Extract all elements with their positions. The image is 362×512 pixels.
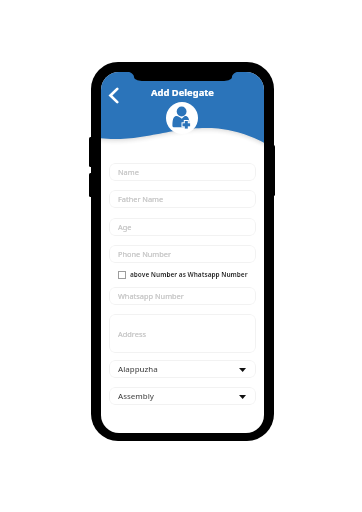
staticText: Name: [118, 167, 139, 177]
staticText: Phone Number: [118, 249, 172, 259]
staticText: Address: [118, 329, 146, 339]
staticText: Add Delegate: [151, 86, 214, 99]
staticText: Whatsapp Number: [118, 291, 184, 301]
button[interactable]: Name: [109, 163, 256, 181]
staticText: Age: [118, 222, 132, 232]
button[interactable]: Assembly: [109, 387, 256, 405]
staticText: Assembly: [118, 391, 155, 402]
button[interactable]: Add profile photo: [166, 102, 198, 134]
button[interactable]: Whatsapp Number: [109, 287, 256, 305]
staticText: Father Name: [118, 194, 164, 204]
staticText: above Number as Whatsapp Number: [130, 270, 248, 279]
button[interactable]: Back: [101, 83, 125, 107]
button[interactable]: Alappuzha: [109, 360, 256, 378]
button[interactable]: Father Name: [109, 190, 256, 208]
button[interactable]: Address: [109, 314, 256, 353]
staticText: Alappuzha: [118, 364, 158, 375]
button[interactable]: Age: [109, 218, 256, 236]
button[interactable]: above Number as Whatsapp Number: [109, 269, 256, 280]
button[interactable]: Phone Number: [109, 245, 256, 263]
